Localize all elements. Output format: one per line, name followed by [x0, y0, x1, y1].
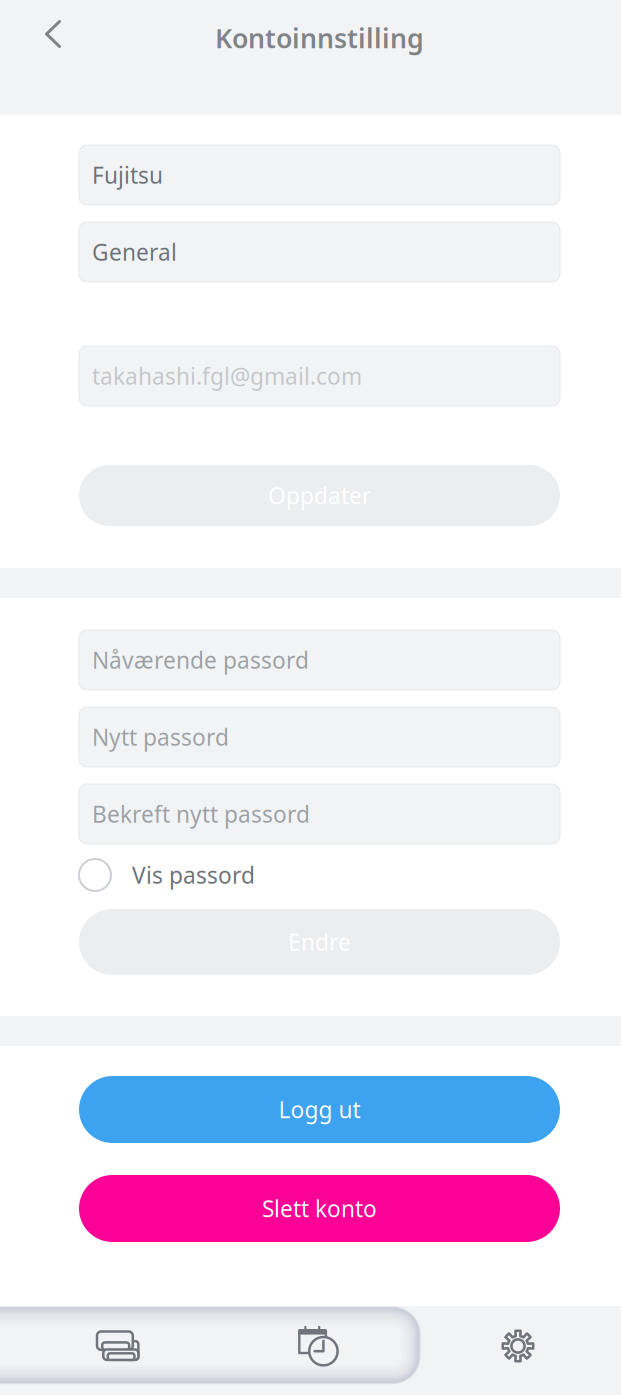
- staticText: Slett konto: [262, 1193, 377, 1224]
- button[interactable]: Printers: [18, 1306, 218, 1386]
- button[interactable]: Vis passord: [79, 853, 560, 897]
- button[interactable]: Slett konto: [79, 1175, 560, 1242]
- staticText: Nåværende passord: [92, 645, 309, 675]
- staticText: Logg ut: [278, 1094, 360, 1125]
- staticText: Endre: [288, 927, 351, 957]
- button[interactable]: History: [218, 1306, 418, 1386]
- staticText: takahashi.fgl@gmail.com: [92, 361, 362, 391]
- button[interactable]: Back: [25, 6, 81, 62]
- staticText: Fujitsu: [92, 160, 163, 190]
- staticText: Bekreft nytt passord: [92, 799, 310, 829]
- staticText: Kontoinnstilling: [215, 20, 424, 56]
- staticText: Vis passord: [132, 860, 255, 890]
- button[interactable]: Oppdater: [79, 465, 560, 526]
- button[interactable]: Settings: [418, 1306, 618, 1386]
- staticText: Nytt passord: [92, 722, 229, 752]
- staticText: Oppdater: [268, 480, 371, 511]
- button[interactable]: Logg ut: [79, 1076, 560, 1143]
- staticText: General: [92, 237, 177, 267]
- button[interactable]: Endre: [79, 909, 560, 975]
